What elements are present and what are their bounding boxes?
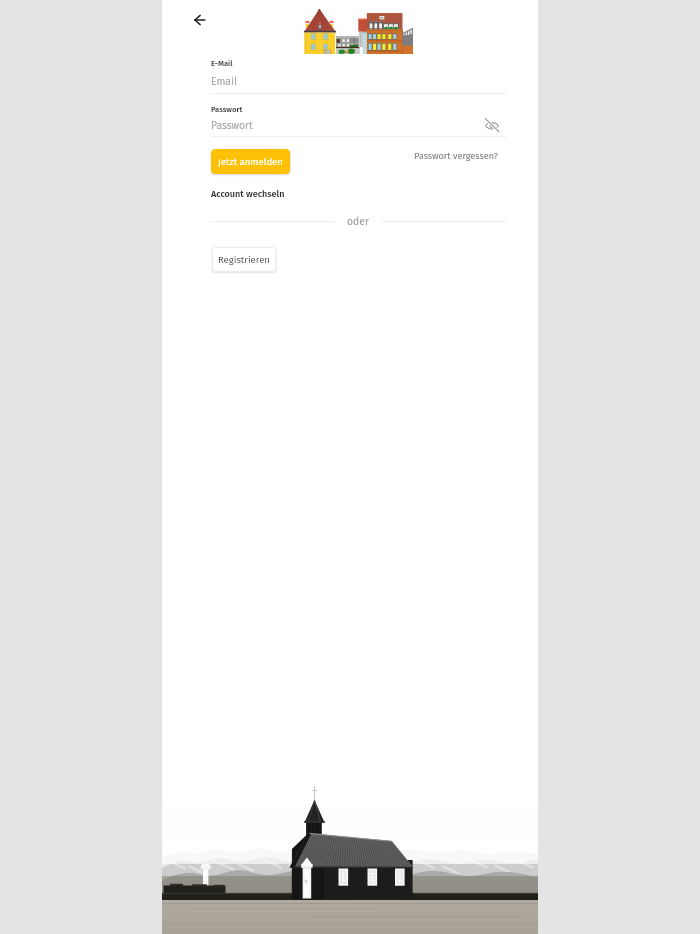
staticText: Passwort	[211, 119, 253, 131]
button[interactable]: Passwort vergessen?	[411, 147, 501, 164]
button[interactable]: Registrieren	[212, 247, 276, 272]
staticText: E-Mail	[211, 59, 233, 68]
staticText: Passwort vergessen?	[414, 150, 498, 161]
staticText: oder	[347, 215, 369, 227]
button[interactable]: Show password	[482, 115, 502, 135]
button[interactable]: Account wechseln	[208, 186, 288, 203]
staticText: Passwort	[211, 105, 243, 114]
button[interactable]: Back	[185, 5, 214, 34]
staticText: Registrieren	[218, 254, 270, 265]
staticText: Account wechseln	[211, 189, 285, 200]
staticText: Email	[211, 75, 237, 87]
button[interactable]: Jetzt anmelden	[211, 149, 290, 174]
staticText: Jetzt anmelden	[218, 156, 283, 167]
